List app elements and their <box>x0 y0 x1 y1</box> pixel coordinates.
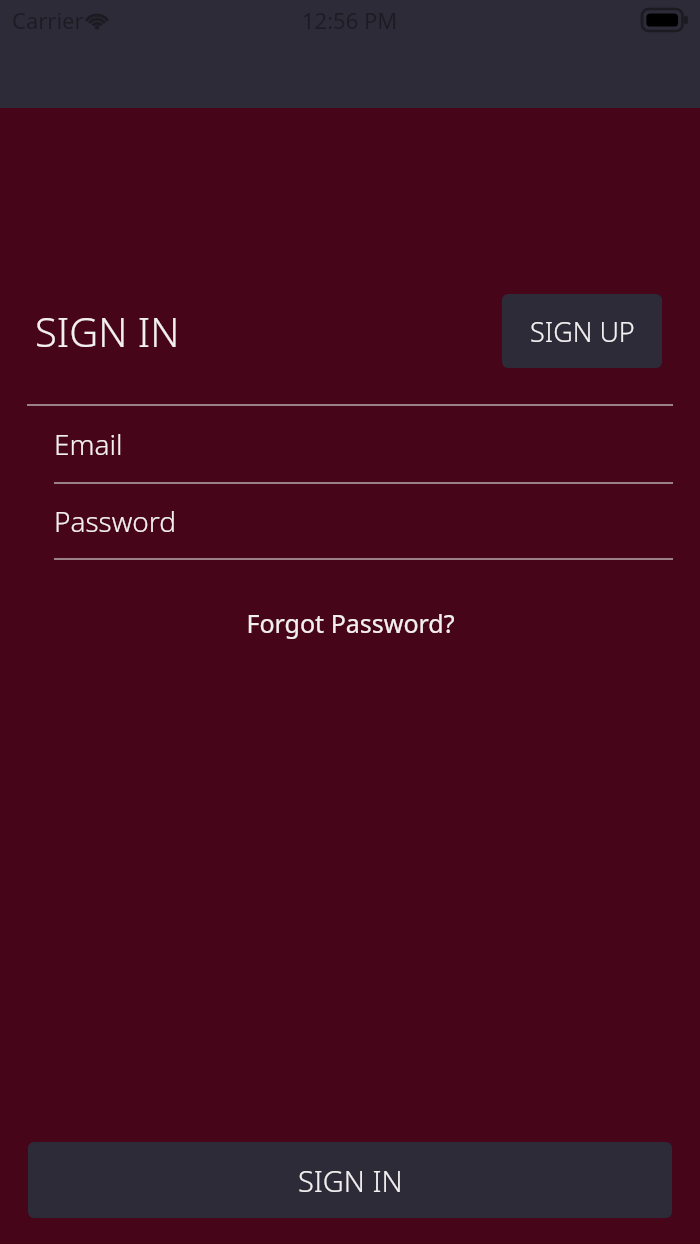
button[interactable]: SIGN IN <box>28 1142 672 1218</box>
button[interactable]: SIGN IN <box>35 304 180 358</box>
staticText: SIGN IN <box>298 1161 403 1200</box>
staticText: Email <box>54 425 123 463</box>
staticText: SIGN UP <box>530 313 635 350</box>
button[interactable]: SIGN UP <box>502 294 662 368</box>
staticText: Password <box>54 502 177 540</box>
button[interactable]: Email <box>0 406 700 482</box>
staticText: Carrier <box>12 5 84 35</box>
button[interactable]: Password <box>0 484 700 558</box>
button[interactable]: Forgot Password? <box>238 602 463 644</box>
staticText: 12:56 PM <box>302 5 398 35</box>
